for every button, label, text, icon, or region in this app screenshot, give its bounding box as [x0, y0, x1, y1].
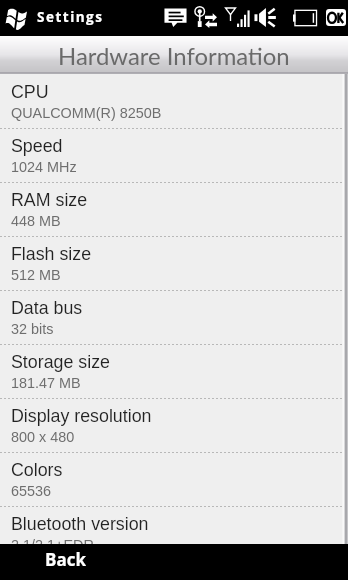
- staticText: Back: [45, 548, 86, 571]
- button[interactable]: Storage size: [0, 344, 348, 398]
- staticText: 32 bits: [11, 321, 54, 337]
- button[interactable]: OK: [326, 9, 346, 26]
- button[interactable]: Data bus: [0, 290, 348, 344]
- staticText: RAM size: [11, 190, 88, 210]
- button[interactable]: CPU: [0, 74, 348, 128]
- staticText: 65536: [11, 483, 52, 499]
- staticText: Speed: [11, 136, 63, 156]
- staticText: 448 MB: [11, 213, 61, 229]
- button[interactable]: Bluetooth version: [0, 506, 348, 544]
- button[interactable]: Display resolution: [0, 398, 348, 452]
- button[interactable]: RAM size: [0, 182, 348, 236]
- staticText: Data bus: [11, 298, 83, 318]
- staticText: Bluetooth version: [11, 514, 149, 534]
- button[interactable]: Flash size: [0, 236, 348, 290]
- button[interactable]: Colors: [0, 452, 348, 506]
- staticText: 2.1/2.1+EDR: [11, 537, 94, 553]
- staticText: QUALCOMM(R) 8250B: [11, 105, 162, 121]
- staticText: 512 MB: [11, 267, 61, 283]
- staticText: Flash size: [11, 244, 92, 264]
- staticText: Display resolution: [11, 406, 152, 426]
- staticText: Settings: [37, 8, 104, 26]
- button[interactable]: Back: [26, 544, 104, 580]
- staticText: 181.47 MB: [11, 375, 81, 391]
- staticText: Storage size: [11, 352, 110, 372]
- staticText: 1024 MHz: [11, 159, 77, 175]
- staticText: Hardware Information: [58, 41, 290, 70]
- staticText: 800 x 480: [11, 429, 75, 445]
- staticText: Colors: [11, 460, 63, 480]
- staticText: CPU: [11, 82, 49, 102]
- button[interactable]: Speed: [0, 128, 348, 182]
